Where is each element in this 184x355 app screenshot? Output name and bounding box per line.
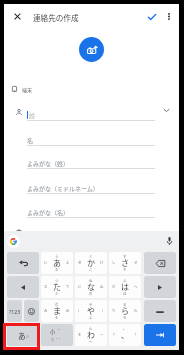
staticText: へ [134, 284, 138, 289]
staticText: ん [89, 326, 93, 331]
button[interactable]: 右 [144, 276, 176, 298]
staticText: 。 [123, 326, 127, 331]
staticText: し [112, 260, 116, 265]
staticText: せ [134, 260, 138, 265]
staticText: ぬ [89, 278, 93, 283]
staticText: 〜 [89, 339, 93, 344]
staticText: ?123 [9, 308, 21, 315]
button[interactable]: 左 [7, 276, 39, 298]
button[interactable]: さ [109, 252, 141, 274]
staticText: や [87, 305, 95, 317]
staticText: る [123, 302, 127, 307]
button[interactable] [24, 300, 39, 322]
button[interactable]: 閉じる [8, 7, 26, 25]
button[interactable]: な [75, 276, 107, 298]
staticText: え [66, 260, 70, 265]
staticText: よみがな（名） [27, 208, 70, 217]
staticText: の [89, 291, 93, 296]
staticText: ？ [112, 332, 116, 337]
staticText: い [44, 260, 48, 265]
staticText: ろ [123, 315, 127, 320]
button[interactable]: ま [41, 300, 73, 322]
button[interactable]: や [75, 300, 107, 322]
button[interactable]: か [75, 252, 107, 274]
staticText: り [112, 308, 116, 313]
button[interactable]: ら [109, 300, 141, 322]
staticText: ほ [123, 291, 127, 296]
button[interactable] [12, 105, 26, 119]
staticText: 小 [50, 328, 56, 336]
staticText: う [55, 254, 59, 259]
staticText: て [66, 284, 70, 289]
button[interactable]: 小 [41, 324, 73, 346]
staticText: き [78, 260, 82, 265]
staticText: ら [121, 305, 129, 317]
staticText: ゜ [59, 337, 63, 342]
button[interactable]: わ [75, 324, 107, 346]
button[interactable] [12, 225, 26, 239]
staticText: 端末 [22, 86, 33, 93]
button[interactable]: 写真を追加 [79, 37, 104, 62]
staticText: 大 [51, 337, 55, 342]
staticText: … [123, 339, 127, 344]
staticText: つ [55, 278, 59, 283]
staticText: ー [100, 332, 104, 337]
staticText: め [66, 308, 70, 313]
staticText: か [87, 257, 95, 269]
staticText: 姓 [29, 111, 36, 120]
staticText: ま [53, 305, 61, 317]
staticText: に [78, 284, 82, 289]
staticText: よ [89, 315, 93, 320]
staticText: く [89, 254, 93, 259]
staticText: ゆ [89, 302, 93, 307]
staticText: ひ [112, 284, 116, 289]
staticText: あ [18, 330, 26, 341]
staticText: ち [44, 284, 48, 289]
staticText: れ [134, 308, 138, 313]
staticText: * [56, 337, 58, 342]
button[interactable]: た [41, 276, 73, 298]
button[interactable]: 音声入力 [162, 234, 176, 248]
button[interactable]: 端末 [12, 82, 72, 96]
staticText: よみがな（姓） [27, 159, 70, 168]
staticText: わ [87, 329, 95, 341]
staticText: す [123, 254, 127, 259]
staticText: 連絡先の作成 [33, 12, 79, 23]
staticText: と [55, 291, 59, 296]
staticText: な [87, 281, 95, 293]
staticText: を [78, 332, 82, 337]
button[interactable]: は [109, 276, 141, 298]
staticText: さ [121, 257, 129, 269]
staticText: み [44, 308, 48, 313]
staticText: よみがな（ミドルネーム） [27, 184, 99, 193]
staticText: あ [53, 257, 61, 269]
staticText: ( [78, 308, 80, 313]
button[interactable]: 名前の詳細 [159, 103, 174, 118]
staticText: け [100, 260, 104, 265]
staticText: た [53, 281, 61, 293]
button[interactable]: 保存 [144, 9, 160, 25]
staticText: 名 [27, 136, 34, 145]
staticText: 、 [121, 329, 129, 341]
button[interactable]: ?123 [7, 300, 22, 322]
button[interactable]: 削除 [144, 252, 176, 274]
button[interactable]: スペース [144, 300, 176, 322]
staticText: は [121, 281, 129, 293]
button[interactable]: 確定 [144, 324, 176, 346]
staticText: こ [89, 267, 93, 272]
button[interactable]: 、 [109, 324, 141, 346]
staticText: ふ [123, 278, 127, 283]
staticText: ゛ [58, 328, 64, 336]
staticText: お [55, 267, 59, 272]
button[interactable]: あ [41, 252, 73, 274]
staticText: そ [123, 267, 127, 272]
button[interactable]: その他のオプション [161, 8, 177, 24]
staticText: ね [100, 284, 104, 289]
button[interactable]: あ [7, 324, 39, 346]
staticText: ) [102, 308, 104, 313]
staticText: a [26, 333, 29, 340]
button[interactable]: 戻る [7, 252, 39, 274]
staticText: も [55, 315, 59, 320]
button[interactable]: Google [7, 235, 20, 248]
